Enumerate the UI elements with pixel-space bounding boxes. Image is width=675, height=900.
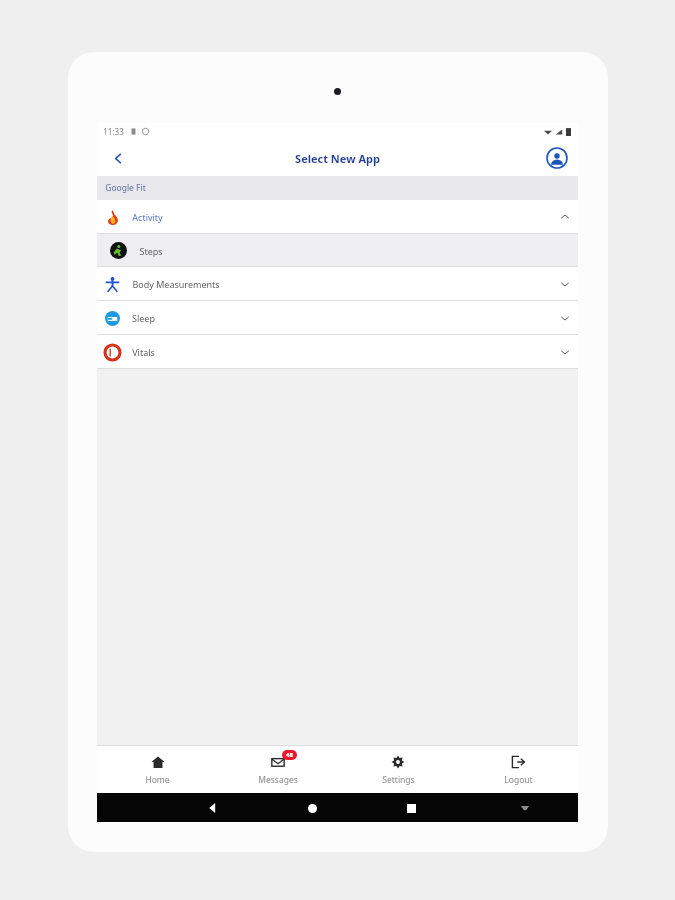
button[interactable]: Back xyxy=(103,143,133,173)
button[interactable]: 48 xyxy=(218,746,338,793)
button[interactable]: Logout xyxy=(458,746,578,793)
staticText: Select New App xyxy=(295,151,380,166)
button[interactable]: Hide keyboard xyxy=(515,798,535,818)
button[interactable]: Sleep xyxy=(97,301,578,335)
button[interactable]: Settings xyxy=(338,746,458,793)
staticText: Sleep xyxy=(132,312,155,324)
button[interactable]: Steps xyxy=(97,234,578,267)
staticText: Google Fit xyxy=(105,182,146,194)
staticText: Activity xyxy=(132,211,163,223)
button[interactable]: Back xyxy=(202,797,224,819)
staticText: Steps xyxy=(139,245,163,257)
staticText: Home xyxy=(145,774,170,786)
button[interactable]: Home xyxy=(301,797,323,819)
staticText: Logout xyxy=(504,774,533,786)
staticText: Body Measurements xyxy=(132,278,220,290)
button[interactable]: Activity xyxy=(97,200,578,234)
button[interactable]: Home xyxy=(97,746,218,793)
staticText: 11:33 xyxy=(103,126,124,137)
button[interactable]: Body Measurements xyxy=(97,267,578,301)
button[interactable]: Profile xyxy=(544,145,570,171)
button[interactable]: Vitals xyxy=(97,335,578,369)
staticText: Settings xyxy=(382,774,415,786)
button[interactable]: Recent apps xyxy=(400,797,422,819)
staticText: 48 xyxy=(286,751,293,759)
staticText: Vitals xyxy=(132,346,155,358)
staticText: Messages xyxy=(258,774,298,786)
